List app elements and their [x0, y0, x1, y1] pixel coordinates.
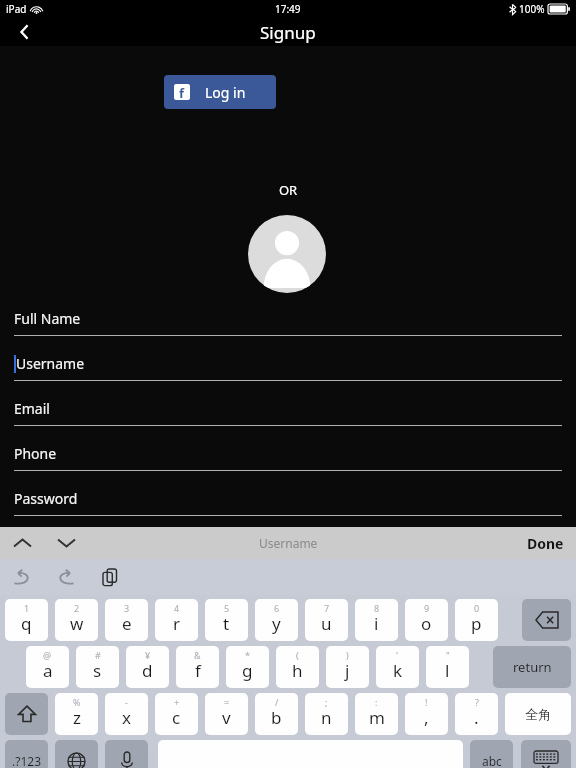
staticText: s: [93, 659, 102, 682]
staticText: i: [374, 612, 379, 635]
staticText: d: [142, 659, 153, 682]
button[interactable]: *: [226, 646, 269, 688]
staticText: @: [43, 649, 52, 661]
button[interactable]: Delete: [522, 599, 571, 641]
button[interactable]: Paste: [88, 559, 132, 595]
button[interactable]: !: [405, 693, 448, 735]
staticText: w: [70, 612, 84, 635]
staticText: :: [375, 696, 378, 708]
staticText: 5: [224, 602, 230, 614]
button[interactable]: Email: [0, 391, 576, 436]
button[interactable]: Next field: [44, 527, 88, 559]
button[interactable]: 2: [55, 599, 98, 641]
button[interactable]: +: [155, 693, 198, 735]
staticText: m: [369, 706, 385, 729]
staticText: 7: [324, 602, 330, 614]
button[interactable]: #: [76, 646, 119, 688]
button[interactable]: Service Provider: [0, 526, 576, 571]
button[interactable]: Hide keyboard: [521, 740, 571, 768]
staticText: ¥: [145, 649, 151, 661]
staticText: Done: [527, 534, 564, 553]
staticText: h: [292, 659, 303, 682]
button[interactable]: Username: [0, 346, 576, 391]
button[interactable]: ': [376, 646, 419, 688]
button[interactable]: Phone: [0, 436, 576, 481]
button[interactable]: Shift: [5, 693, 48, 735]
staticText: +: [174, 696, 180, 708]
staticText: .: [474, 706, 479, 729]
staticText: u: [321, 612, 332, 635]
button[interactable]: Numbers: [5, 740, 48, 768]
button[interactable]: -: [105, 693, 148, 735]
button[interactable]: 4: [155, 599, 198, 641]
staticText: Signup: [260, 21, 316, 44]
button[interactable]: (: [276, 646, 319, 688]
button[interactable]: Redo: [44, 559, 88, 595]
staticText: 9: [424, 602, 430, 614]
button[interactable]: Password: [0, 481, 576, 526]
staticText: ': [396, 649, 399, 661]
staticText: Phone: [14, 444, 57, 463]
staticText: f: [179, 84, 185, 100]
button[interactable]: Back: [0, 18, 48, 46]
button[interactable]: 7: [305, 599, 348, 641]
button[interactable]: 8: [355, 599, 398, 641]
staticText: iPad: [6, 2, 27, 16]
staticText: 2: [74, 602, 80, 614]
staticText: y: [272, 612, 281, 635]
staticText: 6: [274, 602, 280, 614]
button[interactable]: 9: [405, 599, 448, 641]
staticText: (: [296, 649, 299, 661]
button[interactable]: Profile photo: [248, 215, 326, 293]
button[interactable]: /: [255, 693, 298, 735]
button[interactable]: Return: [493, 646, 571, 688]
staticText: #: [95, 649, 101, 661]
button[interactable]: 0: [455, 599, 498, 641]
staticText: 1: [24, 602, 30, 614]
button[interactable]: =: [205, 693, 248, 735]
staticText: ): [346, 649, 349, 661]
button[interactable]: Full width: [505, 693, 571, 735]
staticText: k: [393, 659, 403, 682]
staticText: Password: [14, 489, 78, 508]
staticText: z: [73, 706, 81, 729]
staticText: -: [125, 696, 128, 708]
staticText: c: [172, 706, 181, 729]
button[interactable]: Dictation: [105, 740, 148, 768]
staticText: 0: [474, 602, 480, 614]
staticText: n: [321, 706, 332, 729]
button[interactable]: Done: [527, 534, 564, 553]
button[interactable]: Previous field: [0, 527, 44, 559]
staticText: v: [222, 706, 231, 729]
staticText: =: [224, 696, 230, 708]
button[interactable]: abc: [470, 740, 513, 768]
button[interactable]: 5: [205, 599, 248, 641]
button[interactable]: :: [355, 693, 398, 735]
staticText: ?: [475, 696, 479, 708]
button[interactable]: Undo: [0, 559, 44, 595]
button[interactable]: @: [26, 646, 69, 688]
button[interactable]: Change language: [55, 740, 98, 768]
button[interactable]: ": [426, 646, 469, 688]
staticText: 17:49: [275, 2, 301, 16]
button[interactable]: Full Name: [0, 301, 576, 346]
button[interactable]: ;: [305, 693, 348, 735]
staticText: 4: [174, 602, 180, 614]
button[interactable]: 3: [105, 599, 148, 641]
button[interactable]: %: [55, 693, 98, 735]
staticText: ": [446, 649, 450, 661]
staticText: e: [122, 612, 132, 635]
button[interactable]: 1: [5, 599, 48, 641]
staticText: 100%: [519, 2, 545, 16]
button[interactable]: ): [326, 646, 369, 688]
staticText: OR: [0, 181, 576, 199]
staticText: Username: [259, 535, 318, 551]
button[interactable]: &: [176, 646, 219, 688]
staticText: *: [245, 649, 250, 661]
staticText: 全角: [525, 706, 551, 722]
button[interactable]: 6: [255, 599, 298, 641]
button[interactable]: ¥: [126, 646, 169, 688]
button[interactable]: f: [164, 75, 276, 109]
button[interactable]: ?: [455, 693, 498, 735]
